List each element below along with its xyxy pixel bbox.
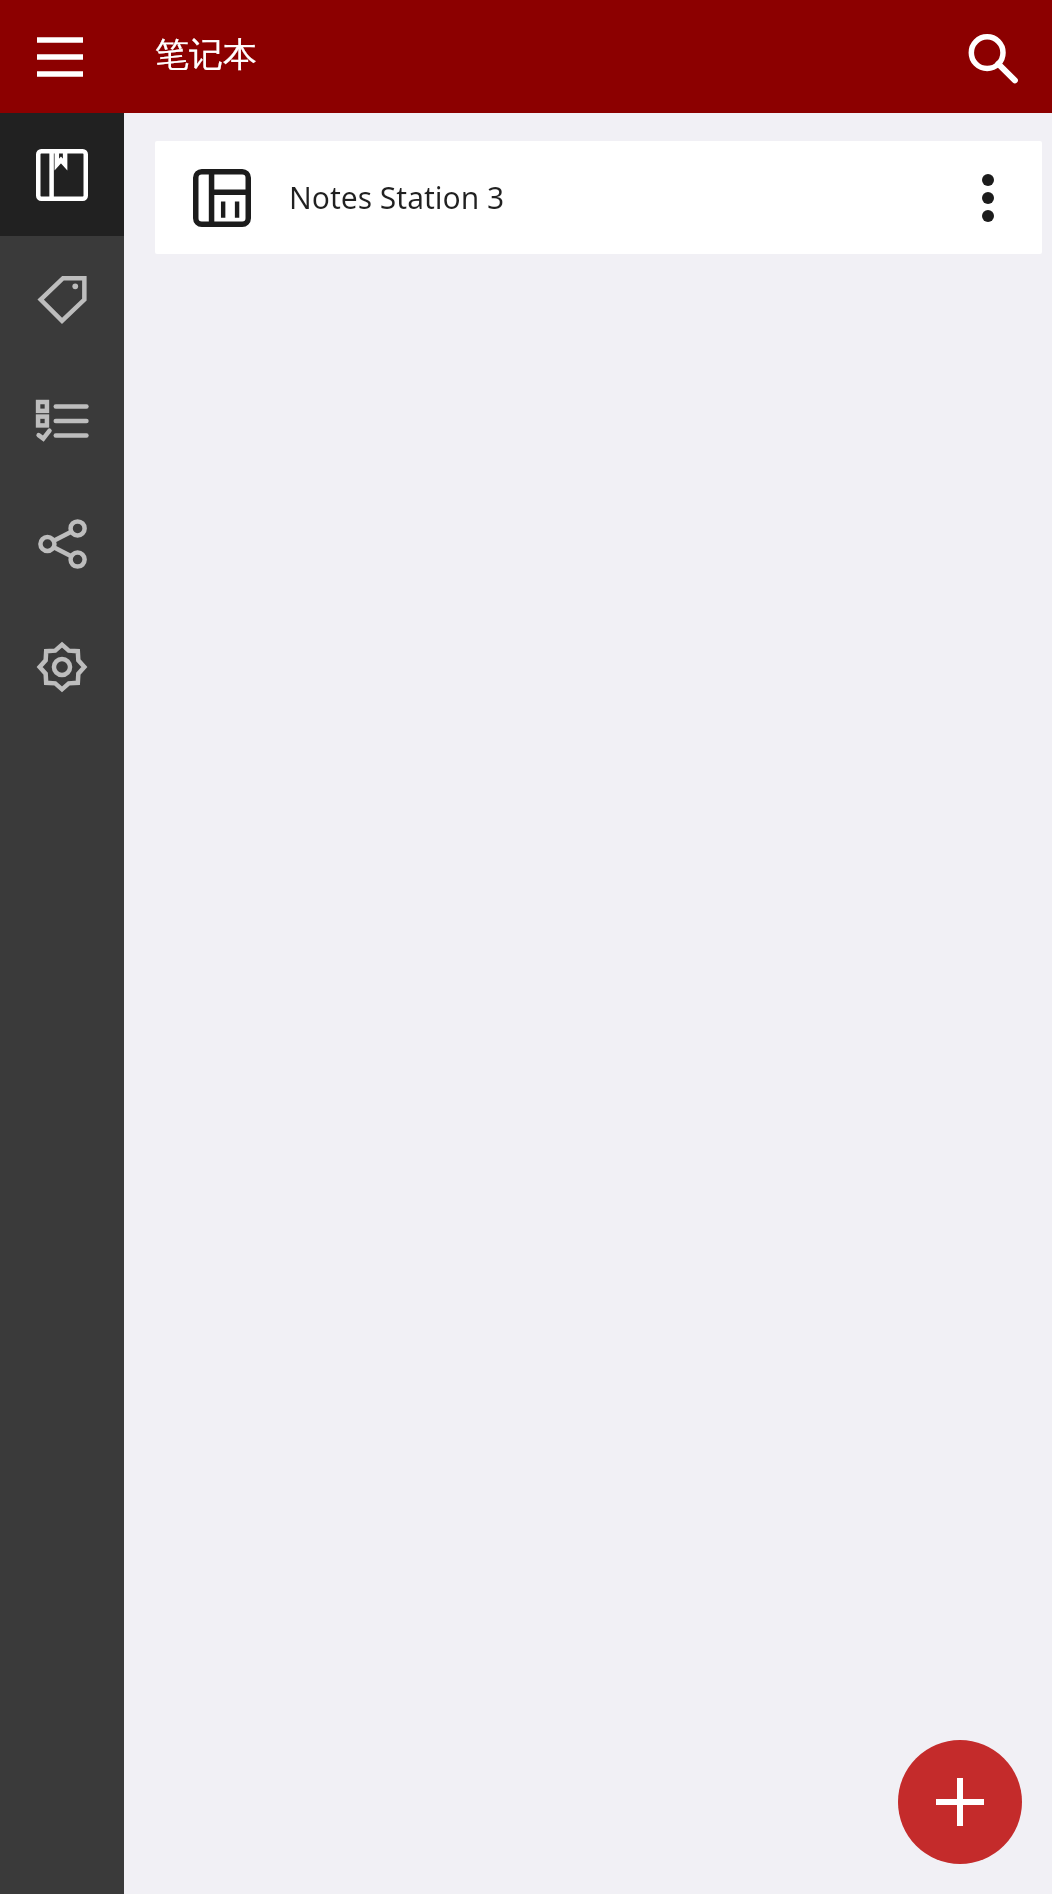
button[interactable]: Search bbox=[948, 14, 1034, 100]
button[interactable]: Notebooks bbox=[0, 113, 124, 236]
staticText: Notes Station 3 bbox=[289, 177, 505, 218]
button[interactable]: Shared bbox=[0, 482, 124, 605]
button[interactable]: Tags bbox=[0, 236, 124, 359]
button[interactable]: Notes Station 3 bbox=[155, 141, 1042, 254]
button[interactable]: Todo bbox=[0, 359, 124, 482]
button[interactable]: Add note bbox=[898, 1740, 1022, 1864]
button[interactable]: Settings bbox=[0, 605, 124, 728]
button[interactable]: Menu bbox=[20, 17, 100, 97]
button[interactable]: More options bbox=[952, 162, 1024, 234]
staticText: 笔记本 bbox=[155, 33, 257, 76]
